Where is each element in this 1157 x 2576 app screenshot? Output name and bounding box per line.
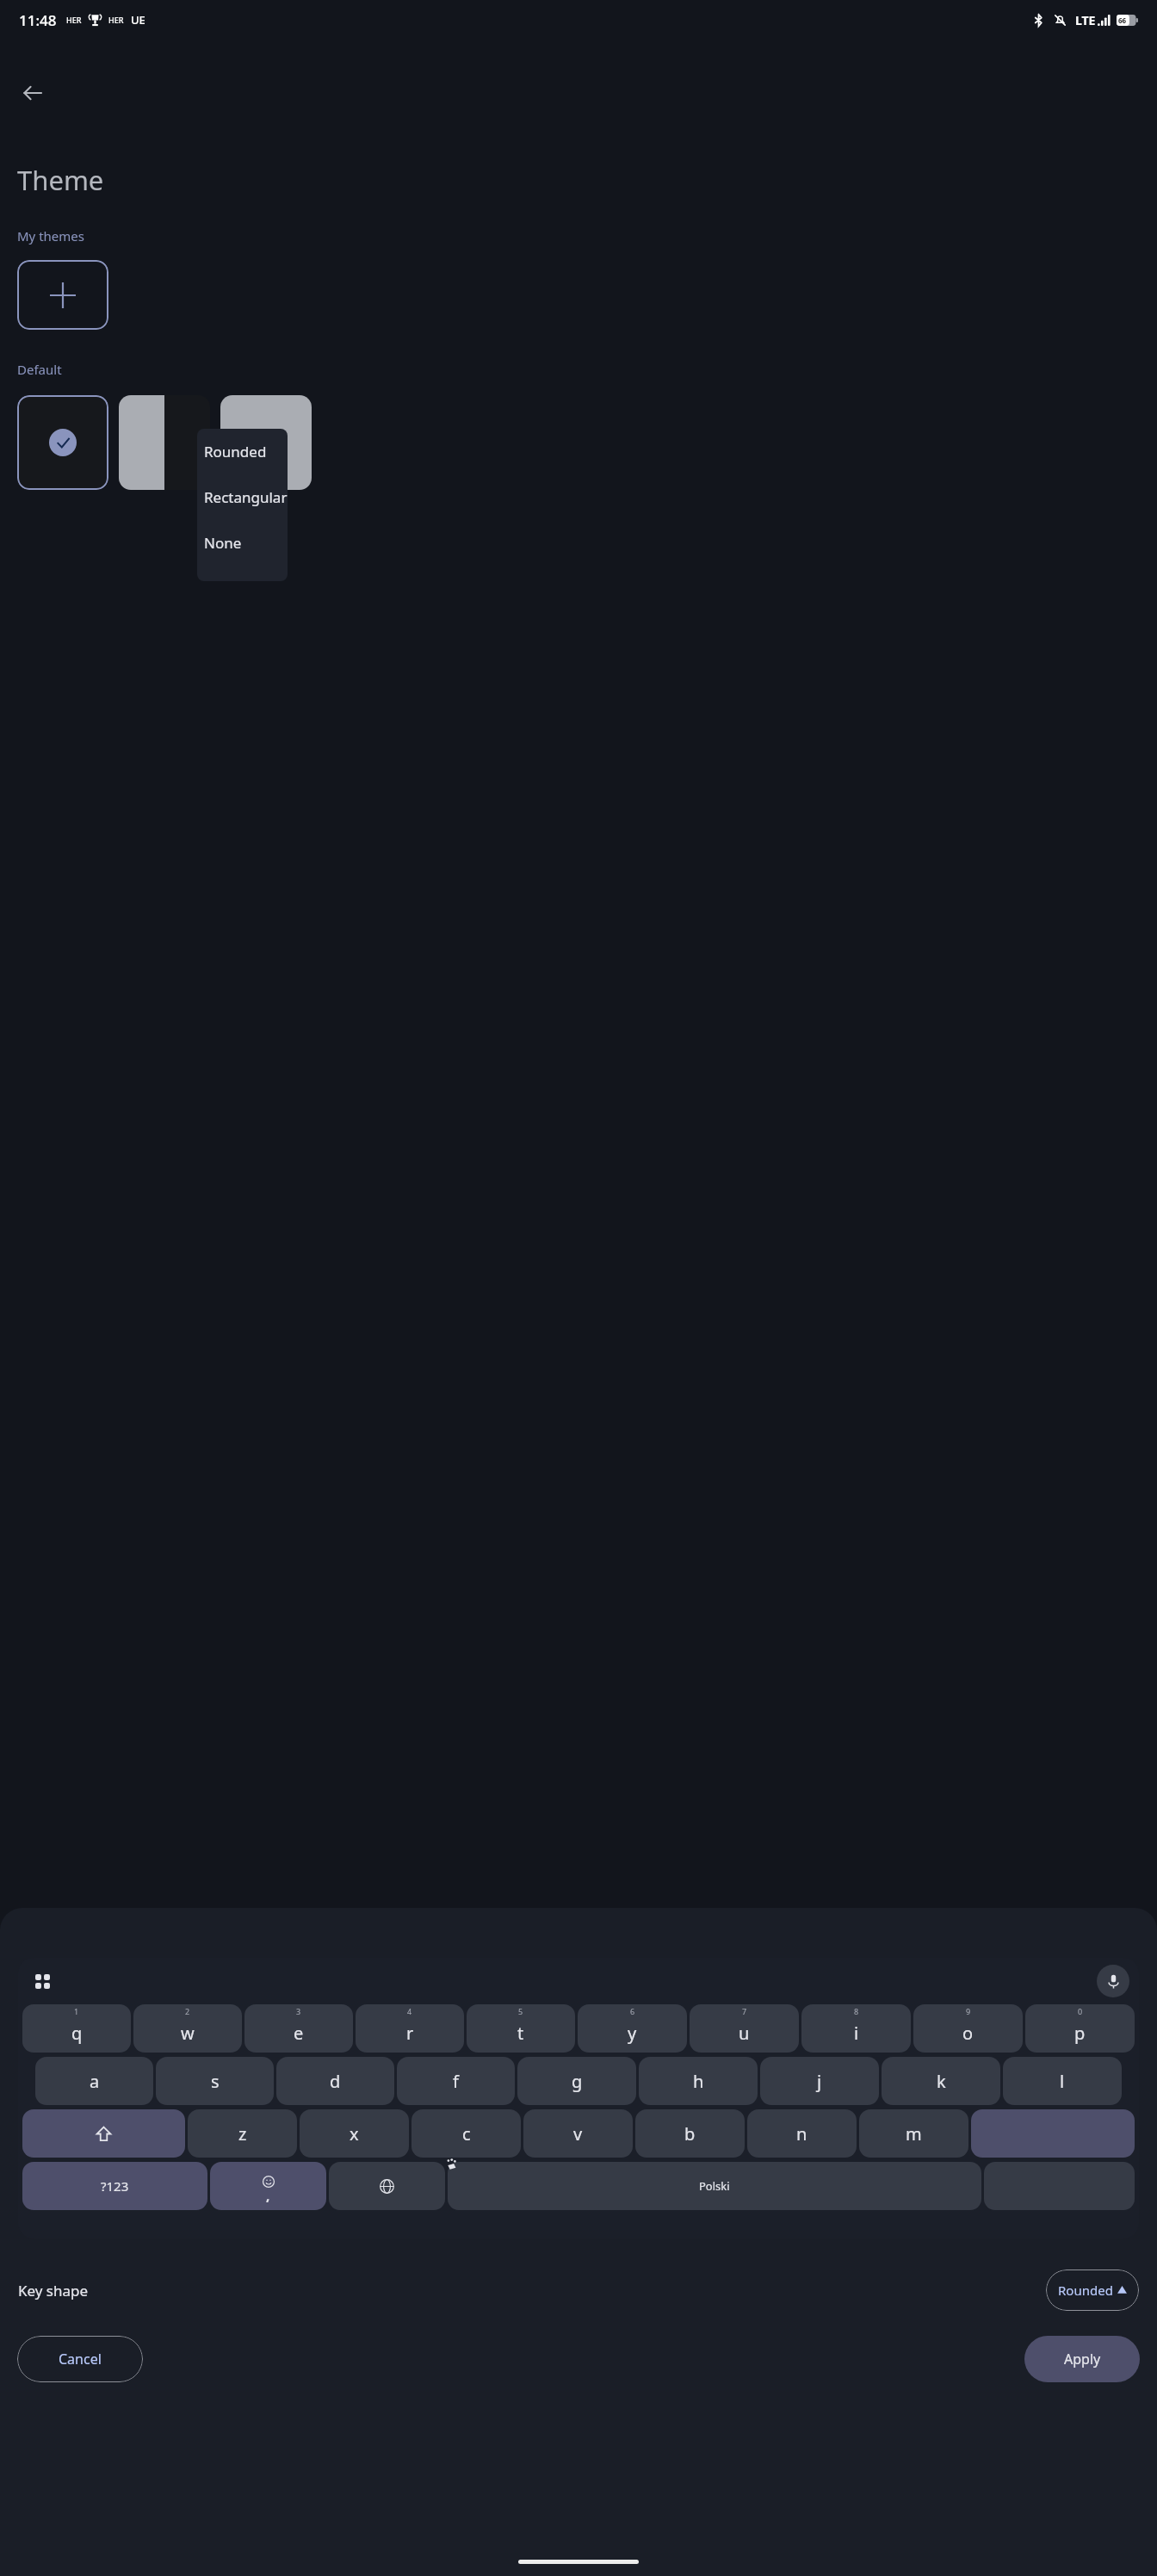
- staticText: j: [817, 2070, 822, 2093]
- staticText: ,: [266, 2187, 270, 2204]
- staticText: o: [962, 2022, 974, 2045]
- button[interactable]: n: [747, 2109, 857, 2158]
- staticText: g: [572, 2070, 583, 2093]
- staticText: h: [693, 2070, 704, 2093]
- staticText: ?123: [101, 2177, 129, 2195]
- staticText: p: [1074, 2022, 1086, 2045]
- staticText: 4: [407, 2006, 412, 2016]
- staticText: Rounded: [204, 442, 267, 461]
- button[interactable]: b: [635, 2109, 745, 2158]
- staticText: c: [462, 2122, 471, 2146]
- staticText: i: [854, 2022, 859, 2045]
- staticText: 1: [74, 2006, 79, 2016]
- staticText: Key shape: [18, 2281, 89, 2300]
- staticText: m: [906, 2122, 922, 2146]
- staticText: y: [628, 2022, 637, 2045]
- staticText: f: [453, 2070, 459, 2093]
- button[interactable]: [119, 395, 210, 490]
- staticText: b: [684, 2122, 696, 2146]
- button[interactable]: Cancel: [17, 2336, 143, 2382]
- button[interactable]: Change language: [329, 2162, 445, 2210]
- staticText: Rectangular: [204, 487, 288, 507]
- staticText: 6: [630, 2006, 635, 2016]
- button[interactable]: Back: [12, 72, 53, 114]
- button[interactable]: Rounded: [1046, 2269, 1139, 2311]
- button[interactable]: v: [523, 2109, 633, 2158]
- button[interactable]: [220, 395, 312, 490]
- staticText: d: [330, 2070, 341, 2093]
- button[interactable]: Rectangular: [197, 474, 288, 520]
- staticText: UE: [131, 12, 145, 28]
- button[interactable]: g: [517, 2057, 636, 2105]
- button[interactable]: Polski: [448, 2162, 981, 2210]
- button[interactable]: k: [882, 2057, 1000, 2105]
- staticText: u: [739, 2022, 750, 2045]
- button[interactable]: 5: [467, 2004, 575, 2053]
- staticText: Rounded: [1058, 2282, 1113, 2299]
- button[interactable]: 1: [22, 2004, 131, 2053]
- staticText: 66: [1118, 15, 1127, 25]
- staticText: a: [90, 2070, 100, 2093]
- staticText: e: [294, 2022, 304, 2045]
- button[interactable]: Apply: [1024, 2336, 1140, 2382]
- button[interactable]: j: [760, 2057, 879, 2105]
- button[interactable]: m: [859, 2109, 968, 2158]
- staticText: n: [796, 2122, 807, 2146]
- staticText: 0: [1078, 2006, 1083, 2016]
- button[interactable]: 4: [356, 2004, 464, 2053]
- staticText: Theme: [17, 162, 104, 198]
- button[interactable]: 6: [578, 2004, 687, 2053]
- staticText: s: [211, 2070, 220, 2093]
- staticText: Cancel: [59, 2350, 102, 2369]
- button[interactable]: 3: [244, 2004, 353, 2053]
- button[interactable]: 9: [913, 2004, 1023, 2053]
- staticText: 3: [296, 2006, 301, 2016]
- staticText: l: [1060, 2070, 1065, 2093]
- staticText: 7: [742, 2006, 747, 2016]
- button[interactable]: x: [300, 2109, 409, 2158]
- button[interactable]: s: [156, 2057, 274, 2105]
- button[interactable]: d: [276, 2057, 394, 2105]
- staticText: LTE: [1075, 12, 1096, 28]
- button[interactable]: ?123: [22, 2162, 207, 2210]
- staticText: Apply: [1064, 2350, 1101, 2369]
- button[interactable]: 0: [1025, 2004, 1135, 2053]
- button[interactable]: 7: [690, 2004, 799, 2053]
- staticText: Default: [17, 361, 62, 378]
- staticText: q: [71, 2022, 83, 2045]
- button[interactable]: None: [197, 520, 288, 566]
- button[interactable]: Voice input: [1097, 1965, 1129, 1997]
- button[interactable]: [17, 395, 108, 490]
- staticText: None: [204, 533, 242, 553]
- button[interactable]: [17, 260, 108, 330]
- button[interactable]: 8: [801, 2004, 911, 2053]
- staticText: My themes: [17, 227, 84, 245]
- staticText: HER: [66, 15, 82, 25]
- button[interactable]: a: [35, 2057, 153, 2105]
- button[interactable]: Backspace: [971, 2109, 1135, 2158]
- button[interactable]: h: [639, 2057, 758, 2105]
- staticText: 11:48: [19, 10, 57, 30]
- staticText: 8: [854, 2006, 859, 2016]
- button[interactable]: c: [411, 2109, 521, 2158]
- staticText: x: [350, 2122, 359, 2146]
- staticText: 2: [185, 2006, 190, 2016]
- button[interactable]: Toolbar: [28, 1966, 57, 1996]
- button[interactable]: Emoji: [210, 2162, 326, 2210]
- staticText: 5: [518, 2006, 523, 2016]
- button[interactable]: Enter: [984, 2162, 1135, 2210]
- button[interactable]: 2: [133, 2004, 242, 2053]
- staticText: z: [238, 2122, 247, 2146]
- button[interactable]: f: [397, 2057, 515, 2105]
- button[interactable]: Rounded: [197, 429, 288, 474]
- staticText: HER: [108, 15, 124, 25]
- staticText: w: [181, 2022, 195, 2045]
- staticText: Polski: [699, 2178, 730, 2194]
- staticText: k: [937, 2070, 946, 2093]
- staticText: t: [517, 2022, 524, 2045]
- button[interactable]: z: [188, 2109, 297, 2158]
- button[interactable]: l: [1003, 2057, 1122, 2105]
- button[interactable]: Shift: [22, 2109, 185, 2158]
- staticText: v: [573, 2122, 583, 2146]
- staticText: 9: [966, 2006, 971, 2016]
